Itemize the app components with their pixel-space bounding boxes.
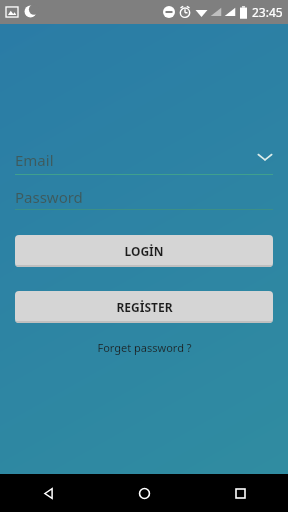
button[interactable]: LOGİN — [15, 235, 273, 267]
button[interactable]: REGİSTER — [15, 291, 273, 323]
staticText: LOGİN — [124, 243, 164, 259]
staticText: Email — [15, 150, 54, 170]
button[interactable]: Recent apps — [192, 474, 288, 512]
button[interactable]: Forget password ? — [91, 337, 198, 358]
staticText: Password — [15, 187, 83, 207]
staticText: REGİSTER — [116, 299, 173, 315]
button[interactable]: Home — [96, 474, 192, 512]
button[interactable]: Password — [15, 185, 273, 209]
other: Show email suggestions — [257, 152, 273, 162]
staticText: 23:45 — [252, 4, 283, 20]
button[interactable]: Email — [15, 146, 273, 174]
button[interactable]: Back — [0, 474, 96, 512]
